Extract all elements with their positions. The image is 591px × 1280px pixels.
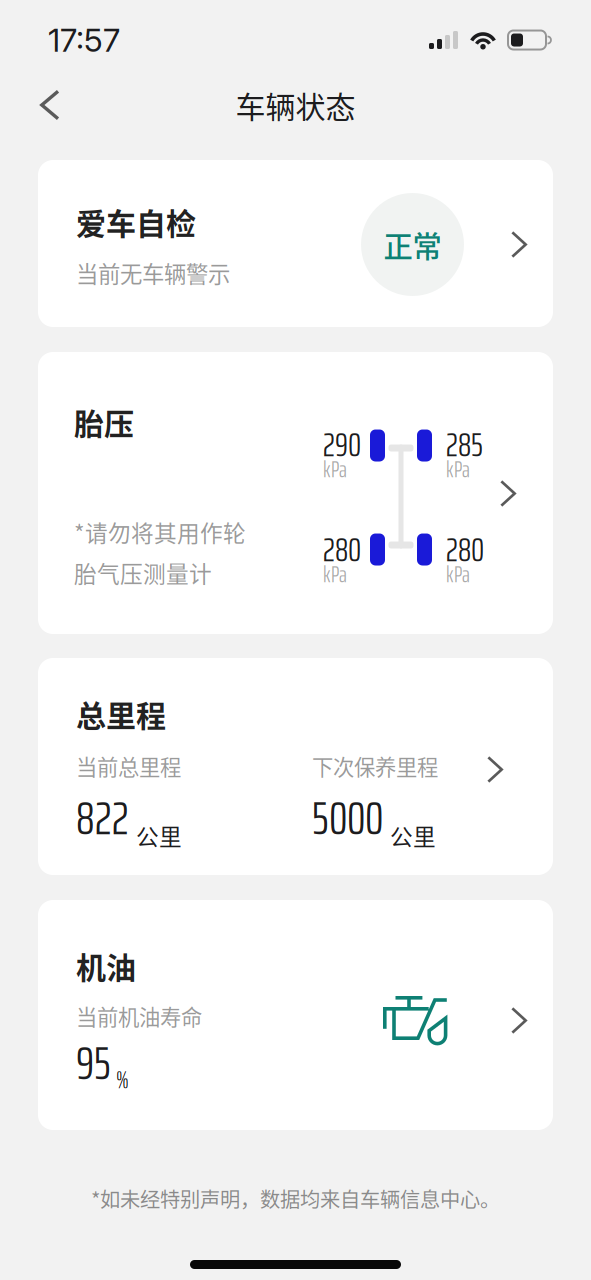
staticText: 爱车自检: [76, 200, 196, 243]
staticText: kPa: [323, 451, 347, 487]
staticText: kPa: [323, 556, 347, 592]
staticText: 280: [323, 523, 361, 576]
staticText: 车辆状态: [235, 83, 355, 127]
staticText: 总里程: [76, 692, 166, 735]
staticText: 280: [446, 523, 484, 576]
staticText: 17:57: [48, 21, 120, 59]
staticText: kPa: [446, 451, 470, 487]
staticText: 822: [76, 781, 129, 855]
staticText: 当前无车辆警示: [76, 256, 230, 289]
button[interactable]: 胎压: [0, 352, 591, 634]
staticText: %: [116, 1061, 129, 1099]
staticText: 公里: [390, 819, 436, 852]
staticText: 正常: [383, 223, 441, 266]
staticText: *如未经特别声明，数据均来自车辆信息中心。: [91, 1184, 500, 1213]
staticText: 285: [446, 418, 483, 471]
button[interactable]: 爱车自检: [0, 160, 591, 327]
staticText: 95: [76, 1026, 111, 1100]
staticText: 当前总里程: [76, 750, 181, 781]
staticText: *请勿将其用作轮 胎气压测量计: [74, 515, 246, 589]
staticText: 下次保养里程: [312, 750, 438, 781]
staticText: 当前机油寿命: [76, 1000, 202, 1031]
button[interactable]: 机油: [0, 900, 591, 1130]
staticText: 5000: [312, 781, 383, 855]
staticText: kPa: [446, 556, 470, 592]
staticText: 公里: [136, 819, 182, 852]
button[interactable]: Back: [20, 75, 80, 135]
staticText: 290: [323, 418, 361, 471]
staticText: 胎压: [74, 400, 134, 443]
button[interactable]: 总里程: [0, 658, 591, 875]
staticText: 机油: [76, 944, 136, 987]
